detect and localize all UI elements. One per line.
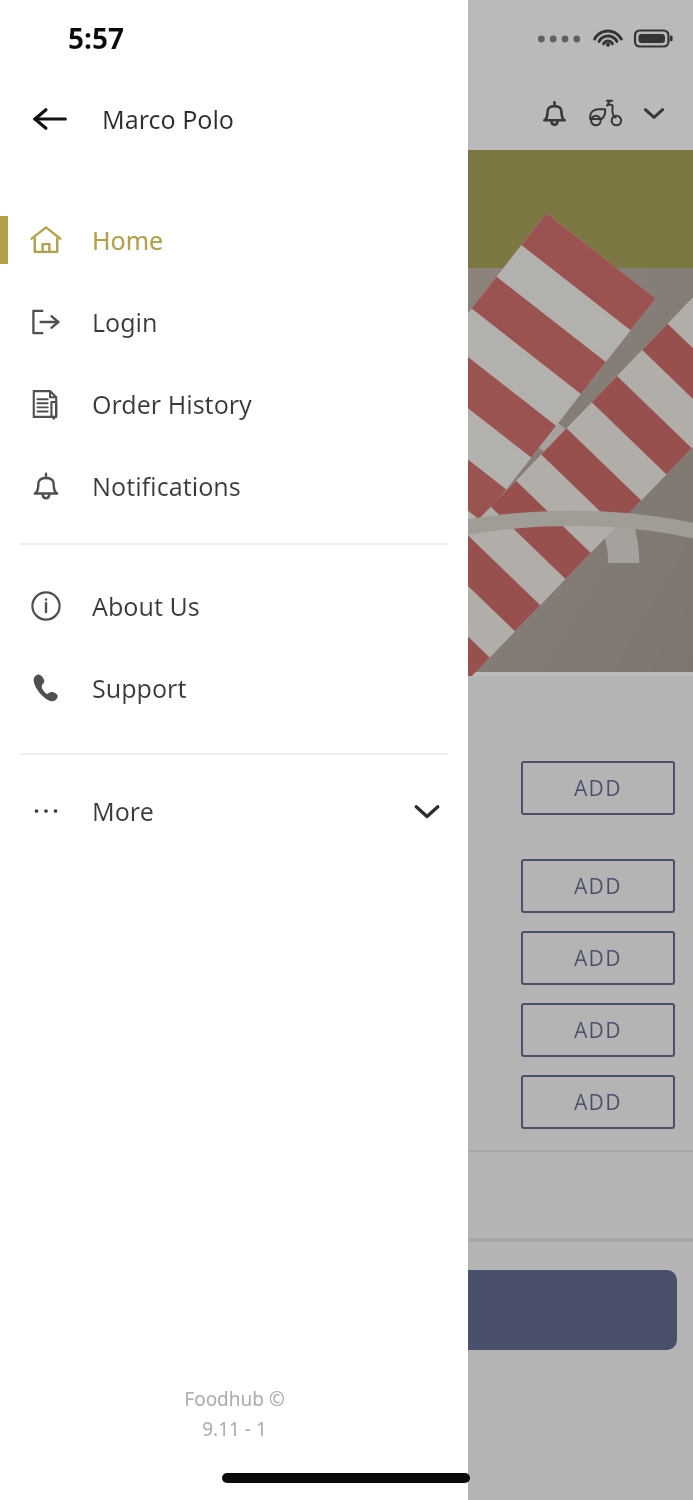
button[interactable]: 7.99 [0, 752, 693, 824]
button[interactable]: Delivery options [579, 87, 631, 139]
button[interactable]: Order History [0, 363, 468, 445]
staticText: Home [92, 223, 164, 257]
staticText: Foodhub © [184, 1386, 285, 1412]
button[interactable]: 4.50 [0, 850, 693, 922]
button[interactable]: Home [0, 199, 468, 281]
staticText: Order History [92, 387, 252, 421]
staticText: ADD [574, 1088, 622, 1117]
button[interactable]: ADD [521, 761, 675, 815]
staticText: order now for [6, 211, 177, 245]
button[interactable]: Login [0, 281, 468, 363]
staticText: ADD [574, 774, 622, 803]
button[interactable]: Expand [631, 90, 677, 136]
staticText: ADD [574, 944, 622, 973]
staticText: 9.11 - 1 [202, 1416, 267, 1442]
button[interactable]: 5.50 [0, 922, 693, 994]
staticText: More [92, 794, 154, 828]
staticText: Support [92, 671, 187, 705]
button[interactable]: Notifications [529, 88, 579, 138]
staticText: Login [92, 305, 158, 339]
staticText: 5:57 [68, 19, 124, 57]
button[interactable]: Back [22, 91, 78, 147]
button[interactable]: Support [0, 647, 468, 729]
staticText: ADD [574, 1016, 622, 1045]
button[interactable]: ADD [521, 931, 675, 985]
button[interactable]: About Us [0, 565, 468, 647]
staticText: ADD [574, 872, 622, 901]
button[interactable] [16, 1270, 677, 1350]
button[interactable]: ADD [521, 859, 675, 913]
staticText: About Us [92, 589, 200, 623]
button[interactable]: ADD [521, 1075, 675, 1129]
staticText: Notifications [92, 469, 241, 503]
button[interactable]: More [0, 777, 468, 845]
button[interactable]: Notifications [0, 445, 468, 527]
staticText: Marco Polo [102, 102, 234, 136]
button[interactable]: ADD [521, 1003, 675, 1057]
button[interactable]: 3.90 [0, 1066, 693, 1138]
button[interactable]: 4.50 [0, 994, 693, 1066]
